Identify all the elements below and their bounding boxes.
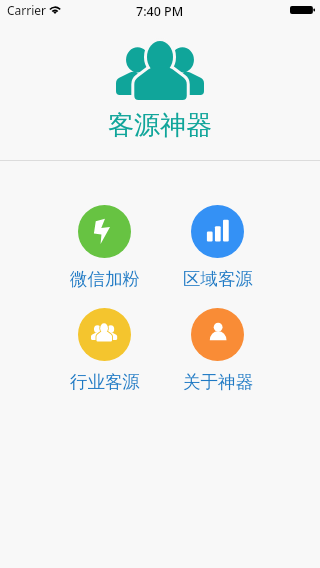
staticText: 7:40 PM	[136, 3, 184, 20]
button[interactable]: 关于神器	[161, 308, 274, 393]
staticText: 微信加粉	[70, 268, 140, 290]
button[interactable]: 微信加粉	[48, 205, 161, 290]
staticText: 行业客源	[70, 371, 140, 393]
button[interactable]: 区域客源	[161, 205, 274, 290]
staticText: 区域客源	[183, 268, 253, 290]
button[interactable]: 行业客源	[48, 308, 161, 393]
staticText: 关于神器	[183, 371, 253, 393]
other: Wi-Fi signal	[49, 5, 61, 14]
other: Battery full	[290, 6, 315, 14]
staticText: 客源神器	[108, 109, 212, 142]
staticText: Carrier	[7, 2, 47, 18]
